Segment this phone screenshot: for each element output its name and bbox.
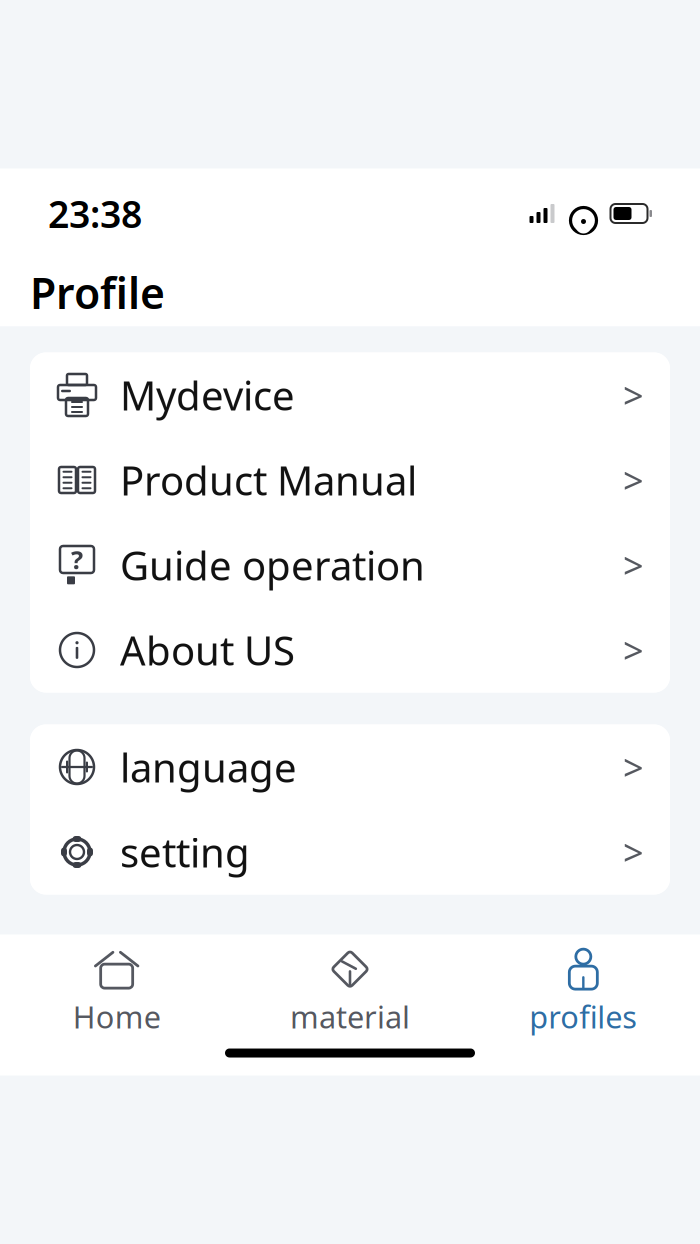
staticText: > (623, 828, 644, 876)
button[interactable]: setting (30, 809, 670, 894)
button[interactable]: Mydevice (30, 352, 670, 437)
staticText: material (290, 996, 410, 1037)
staticText: setting (120, 825, 250, 878)
staticText: Guide operation (120, 538, 425, 591)
staticText: Product Manual (120, 453, 417, 506)
button[interactable]: material (233, 936, 467, 1037)
staticText: ? (71, 543, 83, 576)
staticText: > (623, 456, 644, 504)
staticText: Home (73, 996, 161, 1037)
staticText: About US (120, 623, 295, 676)
button[interactable]: Product Manual (30, 437, 670, 522)
button[interactable]: Home (0, 936, 233, 1037)
staticText: 23:38 (48, 189, 142, 238)
button[interactable]: language (30, 724, 670, 809)
staticText: > (623, 371, 644, 419)
button[interactable]: About US (30, 607, 670, 692)
staticText: language (120, 740, 297, 793)
staticText: > (623, 626, 644, 674)
button[interactable]: ? (30, 522, 670, 607)
staticText: profiles (529, 996, 637, 1037)
button[interactable]: profiles (467, 936, 700, 1037)
staticText: Mydevice (120, 368, 295, 421)
staticText: Profile (30, 264, 165, 321)
staticText: > (623, 541, 644, 589)
staticText: > (623, 743, 644, 791)
